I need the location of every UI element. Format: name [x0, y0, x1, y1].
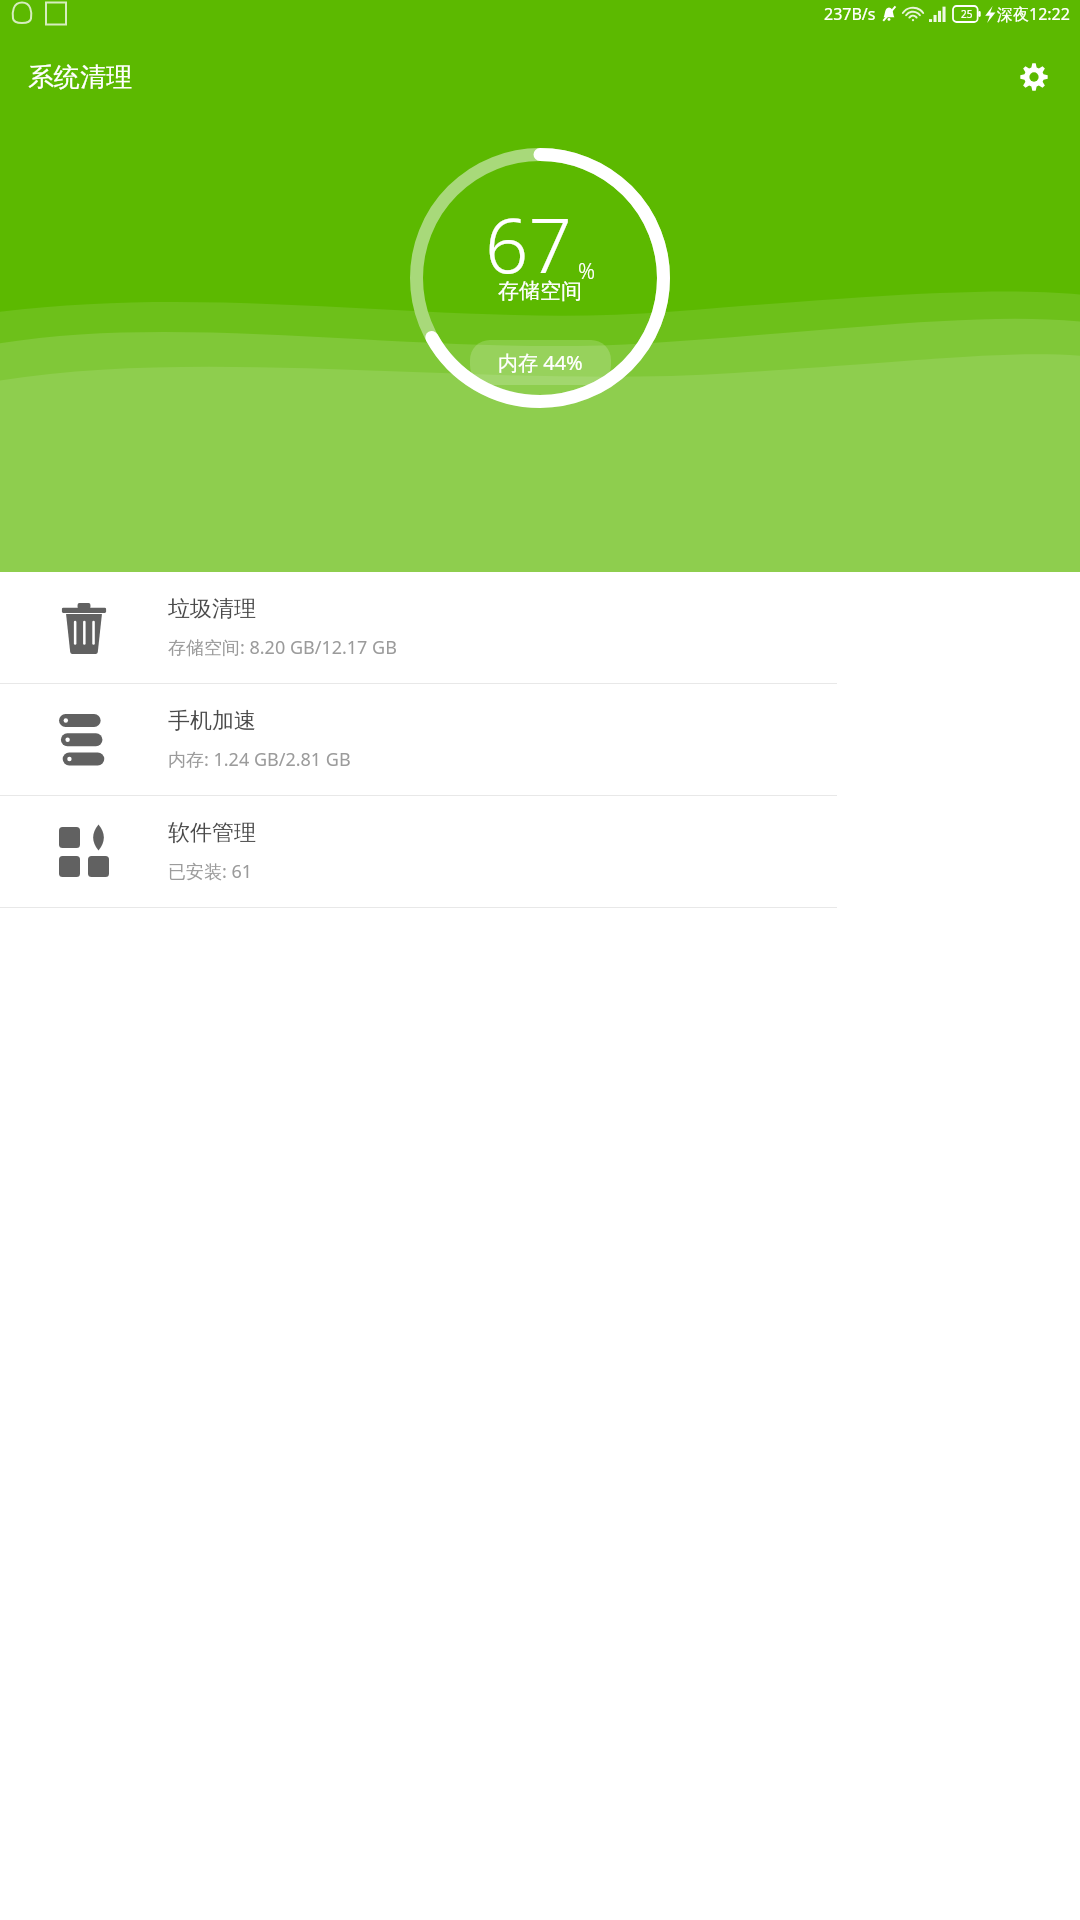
- button[interactable]: 软件管理: [0, 796, 1080, 907]
- staticText: 67: [485, 192, 572, 296]
- button[interactable]: 手机加速: [0, 684, 1080, 795]
- button[interactable]: 内存 44%: [470, 340, 611, 385]
- staticText: 系统清理: [28, 61, 132, 94]
- staticText: %: [578, 257, 596, 286]
- staticText: 深夜12:22: [997, 3, 1070, 25]
- staticText: 存储空间: [498, 278, 582, 304]
- staticText: 手机加速: [168, 707, 256, 735]
- staticText: 内存 44%: [498, 349, 583, 376]
- staticText: 237B/s: [824, 3, 876, 25]
- staticText: 已安装: 61: [168, 859, 253, 884]
- button[interactable]: Settings: [1010, 53, 1058, 101]
- staticText: 存储空间: 8.20 GB/12.17 GB: [168, 635, 397, 660]
- staticText: 内存: 1.24 GB/2.81 GB: [168, 747, 351, 772]
- staticText: 垃圾清理: [168, 595, 256, 623]
- staticText: 25: [961, 7, 973, 21]
- button[interactable]: 垃圾清理: [0, 572, 1080, 683]
- staticText: 软件管理: [168, 819, 256, 847]
